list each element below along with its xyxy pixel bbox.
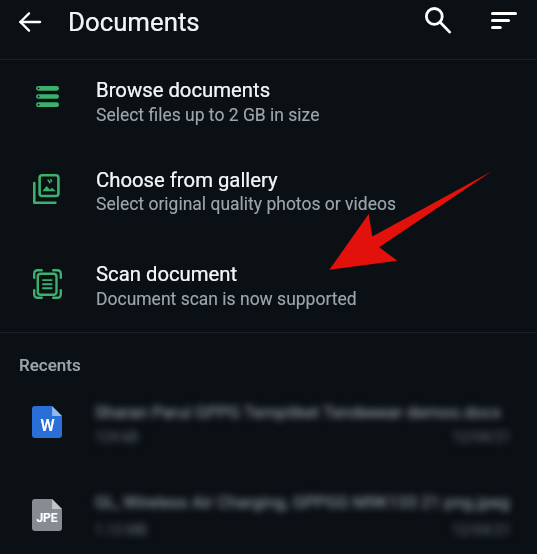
button[interactable]: Browse documents [0, 59, 537, 142]
staticText: 12/04/21 [452, 522, 511, 538]
staticText: 1.13 MB [95, 522, 147, 538]
staticText: 124 kB [95, 429, 138, 445]
staticText: 12/04/21 [452, 429, 511, 445]
staticText: Document scan is now supported [96, 289, 357, 310]
button[interactable]: Scan document [0, 236, 537, 331]
button[interactable]: Search [415, 0, 459, 40]
button[interactable]: Choose from gallery [0, 142, 537, 236]
staticText: W [40, 416, 55, 435]
staticText: Documents [68, 7, 200, 37]
staticText: JPE [36, 511, 58, 525]
staticText: Scan document [96, 262, 238, 286]
staticText: Select original quality photos or videos [96, 194, 396, 215]
button[interactable]: Sort [482, 0, 526, 41]
button[interactable]: W [0, 0, 537, 554]
staticText: Recents [19, 355, 81, 375]
staticText: GL, Wireless Air Charging, GPPGG M9K133 … [95, 492, 510, 512]
button[interactable]: JPE [0, 0, 537, 554]
staticText: Browse documents [96, 78, 271, 102]
button[interactable]: Back [8, 0, 52, 44]
staticText: Choose from gallery [96, 168, 278, 192]
staticText: Select files up to 2 GB in size [96, 105, 320, 126]
staticText: Sharan Parul GPPG Tempitket Tendeeear de… [95, 402, 501, 422]
